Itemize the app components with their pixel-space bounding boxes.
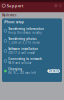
button[interactable]: Charging [2, 66, 62, 76]
staticText: Support [7, 3, 24, 8]
button[interactable]: Transferring information [2, 26, 62, 36]
staticText: Details [49, 69, 59, 73]
staticText: 86 % — 40 min left [8, 71, 36, 75]
staticText: 1,248 of 3,510 items [8, 41, 39, 44]
button[interactable]: Search [54, 4, 57, 7]
staticText: Keep this device nearby [8, 31, 41, 34]
staticText: Software installation [8, 47, 38, 51]
staticText: Transferring photos [8, 37, 36, 41]
staticText: My devices [2, 13, 16, 17]
staticText: Wi-Fi and cellular [8, 61, 31, 65]
button[interactable]: Software installation [2, 46, 62, 56]
staticText: Transferring information [8, 27, 44, 31]
staticText: iOS 17.4 will install [8, 51, 35, 55]
button[interactable]: Home [2, 4, 5, 7]
button[interactable]: Connecting to network [2, 56, 62, 66]
staticText: iPhone setup [4, 20, 24, 24]
staticText: Connecting to network [8, 57, 42, 61]
button[interactable]: Transferring photos [2, 36, 62, 46]
staticText: Charging [8, 67, 22, 71]
button[interactable]: Account [59, 4, 62, 7]
